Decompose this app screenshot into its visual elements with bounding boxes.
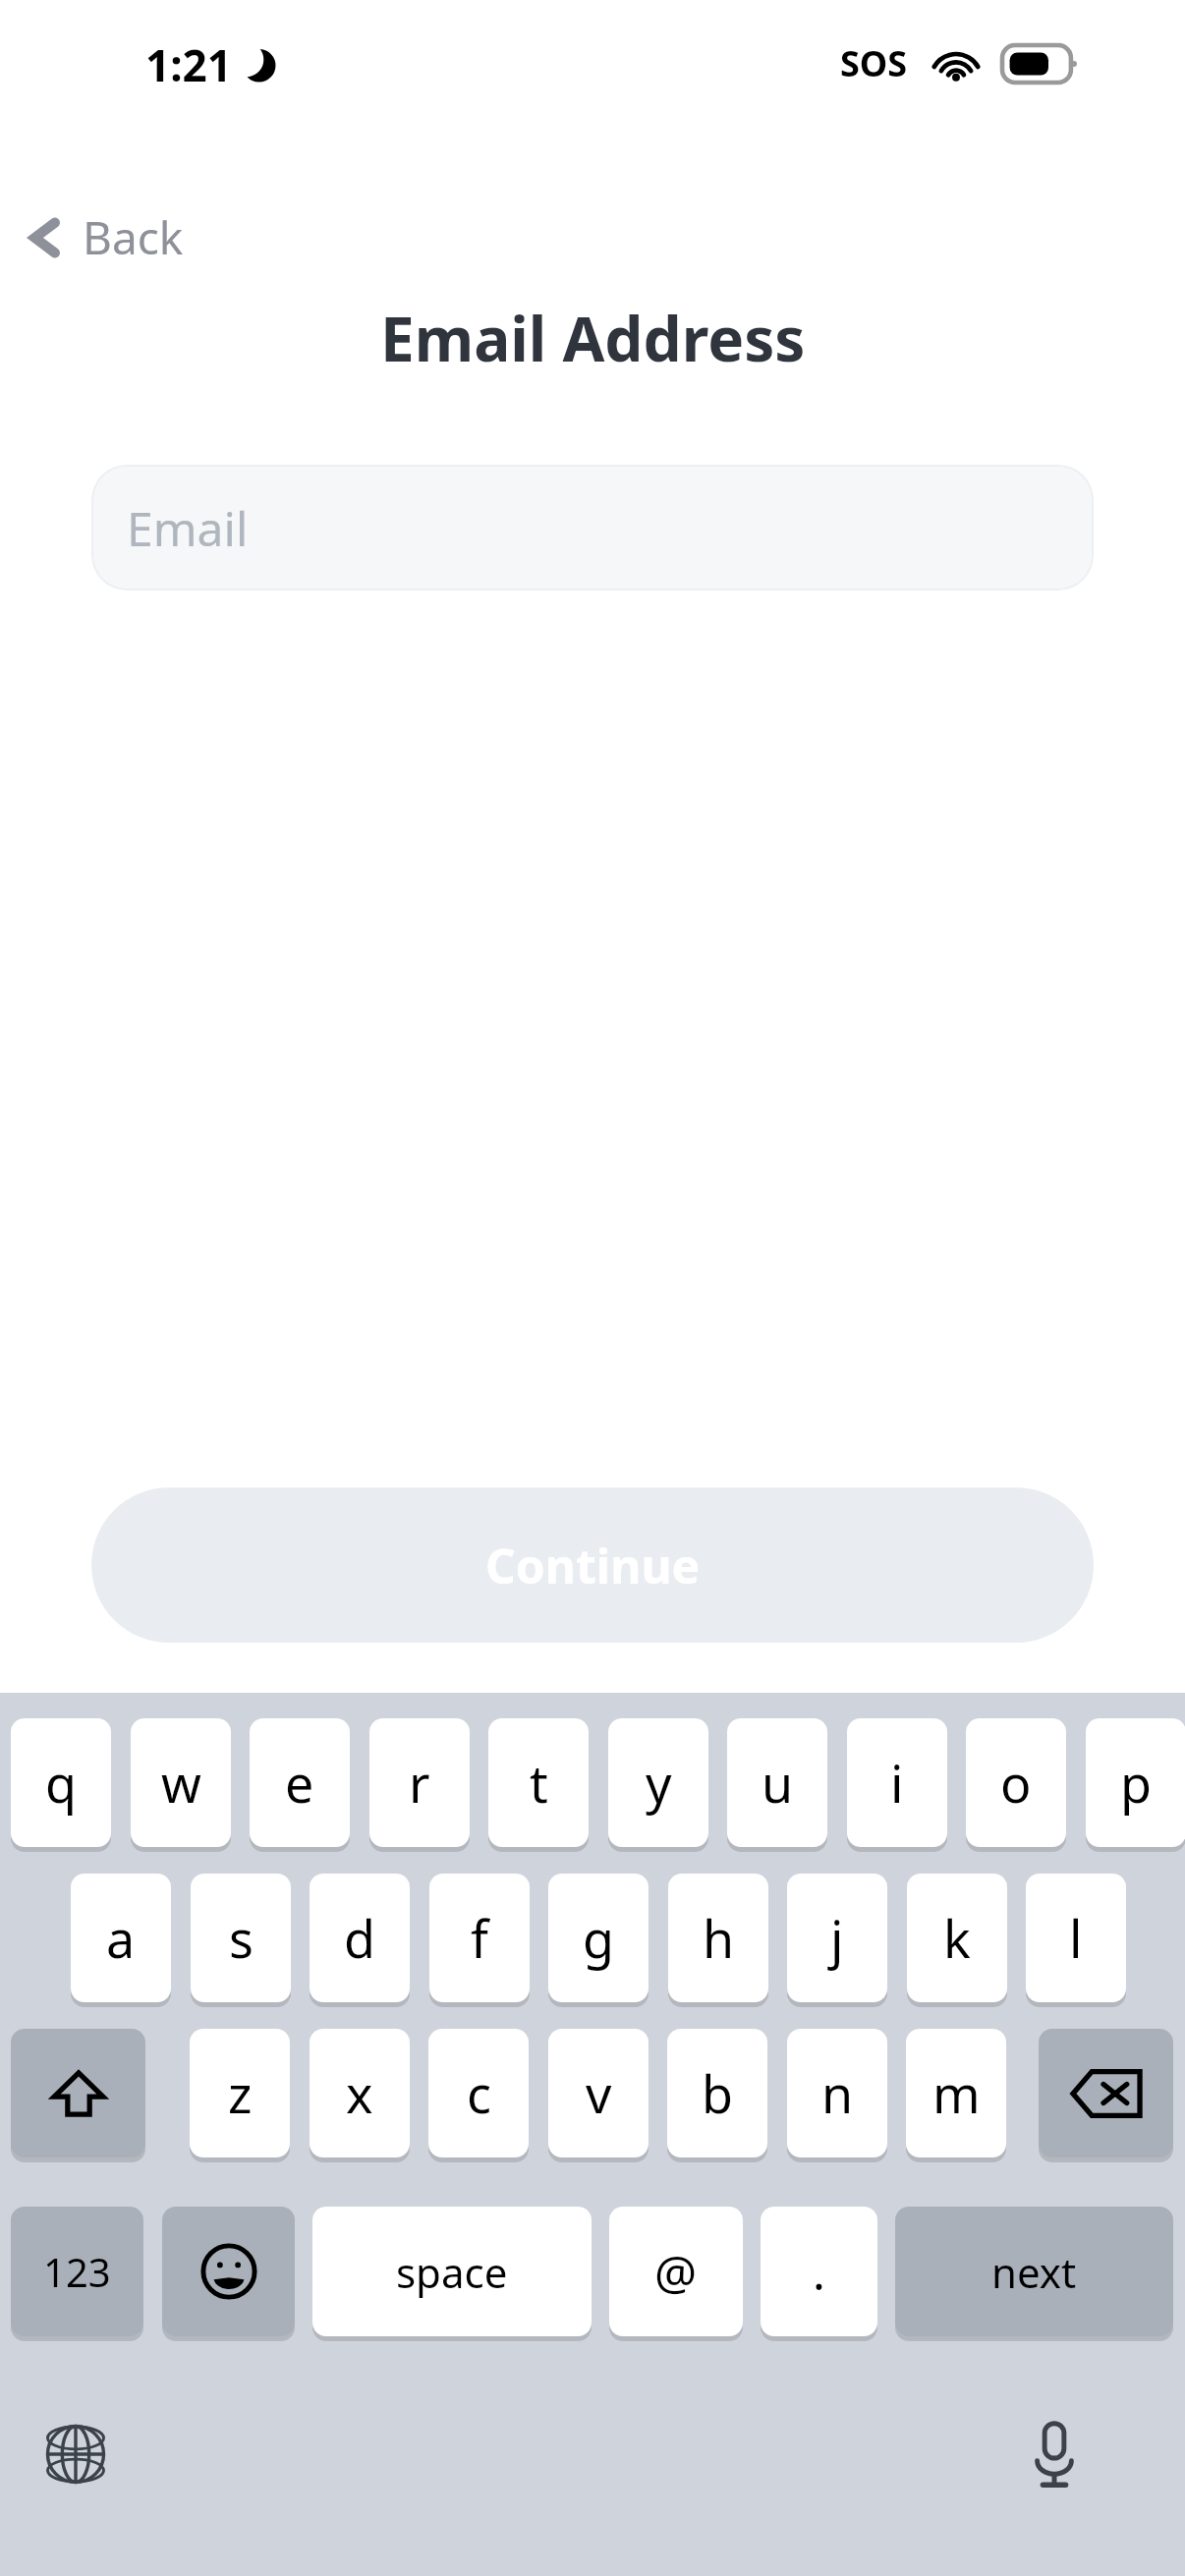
staticText: n: [821, 2058, 854, 2128]
staticText: Email: [127, 496, 249, 560]
staticText: b: [702, 2058, 733, 2128]
button[interactable]: k: [907, 1874, 1007, 2002]
staticText: p: [1120, 1748, 1152, 1818]
staticText: x: [346, 2058, 373, 2128]
staticText: t: [530, 1748, 548, 1818]
staticText: y: [646, 1748, 672, 1818]
staticText: o: [1000, 1748, 1032, 1818]
staticText: r: [409, 1748, 430, 1818]
staticText: .: [813, 2240, 825, 2304]
button[interactable]: Email: [91, 465, 1094, 590]
button[interactable]: h: [668, 1874, 768, 2002]
button[interactable]: t: [488, 1718, 589, 1847]
staticText: Continue: [485, 1534, 701, 1597]
button[interactable]: i: [847, 1718, 947, 1847]
staticText: d: [344, 1903, 375, 1973]
staticText: l: [1069, 1903, 1083, 1973]
staticText: next: [991, 2244, 1077, 2300]
staticText: Back: [83, 206, 184, 268]
staticText: k: [943, 1903, 971, 1973]
button[interactable]: 123: [11, 2207, 143, 2336]
button[interactable]: a: [71, 1874, 171, 2002]
button[interactable]: b: [667, 2029, 767, 2157]
button[interactable]: next: [895, 2207, 1173, 2336]
staticText: s: [229, 1903, 254, 1973]
staticText: u: [762, 1748, 794, 1818]
button[interactable]: space: [312, 2207, 592, 2336]
button[interactable]: Backspace: [1039, 2029, 1173, 2157]
staticText: space: [396, 2244, 508, 2300]
button[interactable]: l: [1026, 1874, 1126, 2002]
button[interactable]: e: [250, 1718, 350, 1847]
button[interactable]: .: [761, 2207, 877, 2336]
staticText: 123: [43, 2245, 111, 2298]
button[interactable]: Shift: [11, 2029, 145, 2157]
button[interactable]: f: [429, 1874, 530, 2002]
button[interactable]: Back: [14, 196, 197, 278]
button[interactable]: z: [190, 2029, 290, 2157]
staticText: h: [703, 1903, 735, 1973]
button[interactable]: v: [548, 2029, 649, 2157]
staticText: m: [932, 2058, 981, 2128]
button[interactable]: w: [131, 1718, 231, 1847]
staticText: q: [45, 1748, 77, 1818]
staticText: @: [654, 2240, 698, 2304]
button[interactable]: Continue: [91, 1487, 1094, 1643]
button[interactable]: j: [787, 1874, 887, 2002]
button[interactable]: o: [966, 1718, 1066, 1847]
button[interactable]: Change keyboard language: [22, 2400, 130, 2508]
staticText: z: [228, 2058, 253, 2128]
staticText: e: [285, 1748, 314, 1818]
button[interactable]: g: [548, 1874, 649, 2002]
button[interactable]: s: [191, 1874, 291, 2002]
staticText: v: [586, 2058, 612, 2128]
staticText: a: [106, 1903, 136, 1973]
button[interactable]: @: [609, 2207, 743, 2336]
button[interactable]: y: [608, 1718, 708, 1847]
staticText: i: [890, 1748, 904, 1818]
button[interactable]: p: [1086, 1718, 1185, 1847]
staticText: j: [830, 1903, 844, 1973]
button[interactable]: Voice input: [1000, 2400, 1108, 2508]
staticText: f: [471, 1903, 488, 1973]
button[interactable]: Emoji keyboard: [162, 2207, 295, 2336]
button[interactable]: n: [787, 2029, 887, 2157]
staticText: 1:21: [145, 35, 232, 94]
button[interactable]: c: [428, 2029, 529, 2157]
staticText: w: [161, 1748, 201, 1818]
button[interactable]: q: [11, 1718, 111, 1847]
button[interactable]: m: [906, 2029, 1006, 2157]
staticText: SOS: [840, 39, 908, 87]
button[interactable]: d: [310, 1874, 410, 2002]
button[interactable]: r: [369, 1718, 470, 1847]
button[interactable]: u: [727, 1718, 827, 1847]
staticText: g: [583, 1903, 614, 1973]
staticText: Email Address: [380, 297, 806, 379]
staticText: c: [467, 2058, 491, 2128]
button[interactable]: x: [310, 2029, 410, 2157]
